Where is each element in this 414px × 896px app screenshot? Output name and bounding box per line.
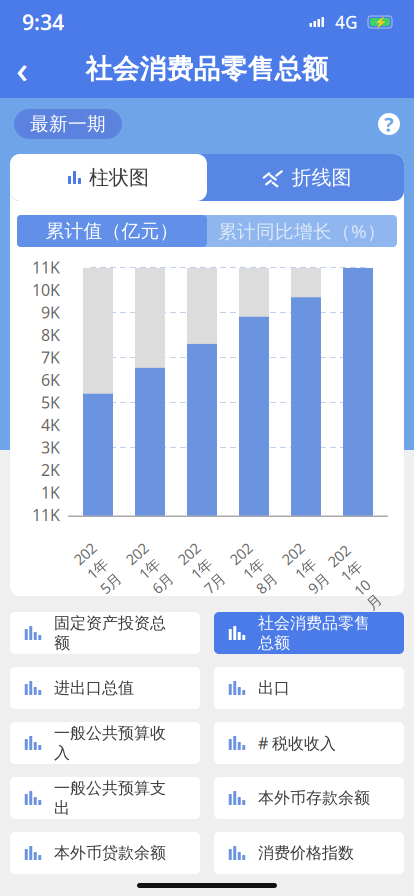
staticText: 9:34: [22, 8, 64, 36]
staticText: 柱状图: [89, 165, 149, 190]
staticText: 4K: [41, 414, 60, 435]
staticText: 8K: [41, 324, 60, 345]
staticText: ?: [384, 111, 394, 137]
staticText: 3K: [41, 437, 60, 458]
button[interactable]: 进出口总值: [10, 667, 200, 709]
button[interactable]: 本外币贷款余额: [10, 832, 200, 874]
staticText: 折线图: [291, 165, 351, 190]
staticText: 消费价格指数: [258, 843, 354, 863]
staticText: 社会消费品零售总额: [85, 53, 328, 85]
staticText: 本外币存款余额: [258, 788, 370, 808]
staticText: ‹: [16, 44, 28, 94]
staticText: 2021年5月: [86, 539, 110, 597]
staticText: 累计同比增长（%）: [218, 219, 386, 243]
staticText: # 税收收入: [258, 732, 336, 754]
staticText: 11K: [32, 257, 60, 278]
button[interactable]: 一般公共预算收入: [10, 722, 200, 764]
staticText: 进出口总值: [54, 678, 134, 698]
button[interactable]: 最新一期: [14, 109, 122, 139]
button[interactable]: 折线图: [207, 154, 404, 201]
button[interactable]: 本外币存款余额: [214, 777, 404, 819]
button[interactable]: 柱状图: [10, 154, 207, 201]
staticText: 固定资产投资总额: [54, 613, 166, 653]
staticText: 2021年7月: [190, 539, 214, 597]
staticText: ⚡: [373, 16, 386, 28]
staticText: 最新一期: [30, 112, 106, 135]
staticText: 一般公共预算支出: [54, 778, 166, 818]
staticText: 7K: [41, 347, 60, 368]
button[interactable]: 一般公共预算支出: [10, 777, 200, 819]
staticText: 6K: [41, 369, 60, 390]
staticText: 5K: [41, 392, 60, 413]
button[interactable]: 消费价格指数: [214, 832, 404, 874]
staticText: 社会消费品零售总额: [258, 613, 370, 653]
staticText: 9K: [41, 302, 60, 323]
staticText: 1K: [41, 482, 60, 503]
staticText: 一般公共预算收入: [54, 723, 166, 763]
button[interactable]: 累计同比增长（%）: [207, 215, 397, 247]
button[interactable]: 累计值（亿元）: [17, 215, 207, 247]
button[interactable]: 出口: [214, 667, 404, 709]
staticText: 出口: [258, 678, 290, 698]
staticText: 2021年9月: [294, 539, 318, 597]
button[interactable]: # 税收收入: [214, 722, 404, 764]
staticText: 4G: [335, 10, 358, 33]
staticText: 2021年6月: [138, 539, 162, 597]
button[interactable]: 社会消费品零售总额: [214, 612, 404, 654]
button[interactable]: 帮助: [378, 113, 400, 135]
staticText: 10K: [32, 279, 60, 300]
staticText: 2021年8月: [242, 539, 266, 597]
staticText: 2021年10月: [346, 539, 370, 615]
staticText: 11K: [32, 504, 60, 525]
button[interactable]: 固定资产投资总额: [10, 612, 200, 654]
button[interactable]: 返回: [0, 47, 44, 91]
staticText: 2K: [41, 459, 60, 480]
staticText: 累计值（亿元）: [45, 219, 178, 242]
staticText: 本外币贷款余额: [54, 843, 166, 863]
